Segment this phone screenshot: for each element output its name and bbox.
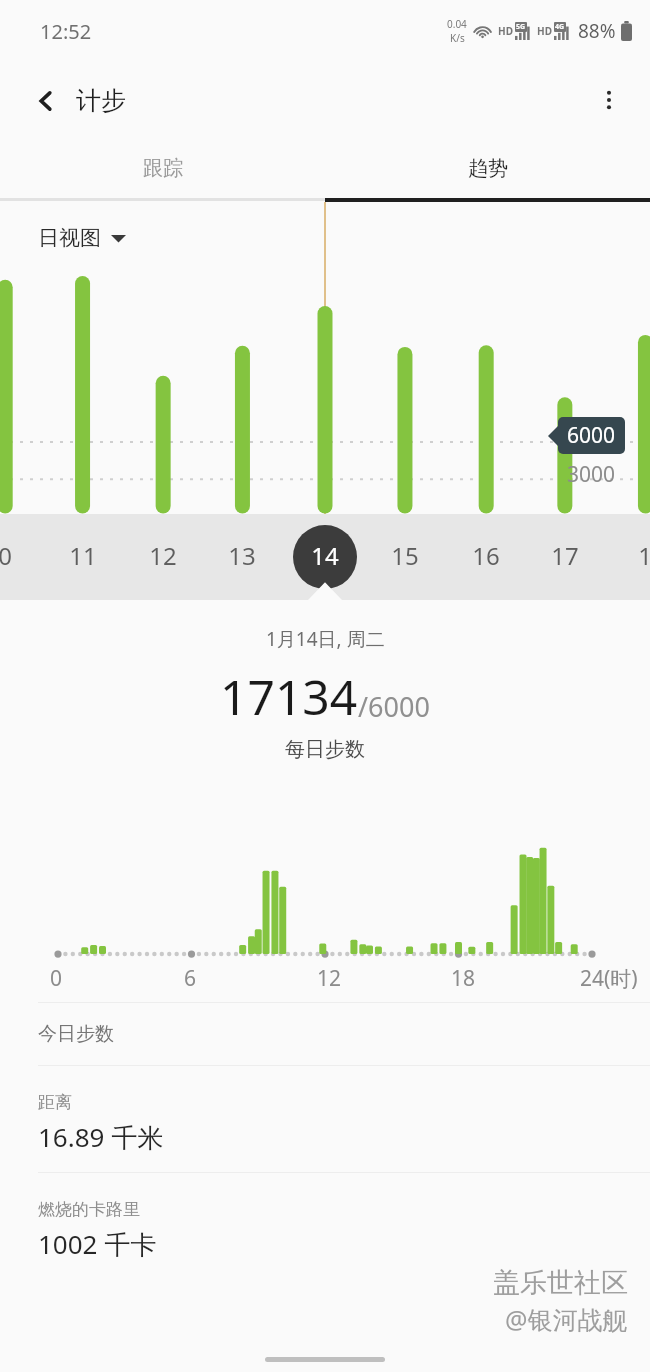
staticText: 燃烧的卡路里 (38, 1199, 140, 1220)
staticText: K/s (450, 31, 465, 45)
button[interactable]: 13 (228, 539, 256, 572)
button[interactable]: 距离 (0, 1066, 650, 1172)
staticText: 盖乐世社区 (493, 1266, 628, 1300)
staticText: @银河战舰 (505, 1302, 628, 1336)
staticText: 0.04 (447, 17, 467, 31)
staticText: 18 (451, 964, 476, 993)
staticText: 17134 (220, 664, 358, 729)
button[interactable]: 今日步数 (0, 1003, 650, 1065)
staticText: 24(时) (580, 964, 638, 993)
button[interactable]: More options (586, 77, 632, 123)
button[interactable]: 跟踪 (0, 138, 325, 198)
button[interactable]: 1 (638, 539, 650, 572)
staticText: 今日步数 (38, 1022, 114, 1046)
staticText: 3000 (567, 460, 616, 489)
staticText: 0 (50, 964, 63, 993)
staticText: 6000 (567, 421, 616, 450)
staticText: 88% (578, 18, 616, 44)
staticText: 12:52 (40, 18, 92, 45)
button[interactable]: 趋势 (325, 138, 650, 198)
staticText: 计步 (76, 85, 126, 116)
button[interactable]: 14 (311, 539, 339, 572)
button[interactable]: 燃烧的卡路里 (0, 1173, 650, 1279)
staticText: 1月14日, 周二 (266, 626, 385, 652)
staticText: 12 (317, 964, 342, 993)
button[interactable]: 12 (149, 539, 177, 572)
button[interactable]: 日视图 (32, 219, 132, 257)
staticText: 6 (184, 964, 197, 993)
staticText: HD (498, 24, 513, 38)
staticText: 趋势 (468, 156, 508, 181)
staticText: 距离 (38, 1092, 72, 1113)
button[interactable]: 17 (551, 539, 579, 572)
button[interactable]: 0 (0, 539, 12, 572)
staticText: HD (537, 24, 552, 38)
staticText: 5G (516, 22, 526, 32)
button[interactable]: 11 (69, 539, 97, 572)
staticText: 每日步数 (285, 737, 365, 762)
staticText: /6000 (358, 688, 430, 725)
staticText: 日视图 (38, 225, 101, 251)
button[interactable]: Back (26, 79, 134, 122)
button[interactable]: 16 (472, 539, 500, 572)
staticText: 1002 千卡 (38, 1226, 157, 1262)
button[interactable]: 15 (391, 539, 419, 572)
staticText: 16.89 千米 (38, 1119, 164, 1155)
staticText: 跟踪 (143, 156, 183, 181)
staticText: 4G (555, 22, 565, 32)
